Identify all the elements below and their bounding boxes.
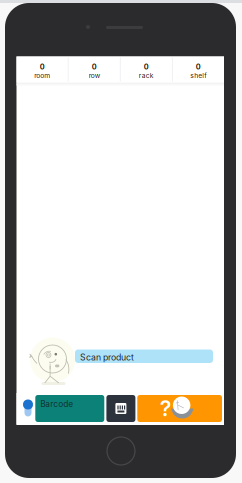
staticText: rack bbox=[139, 72, 154, 80]
button[interactable]: 0 bbox=[173, 56, 224, 82]
button[interactable]: Keyboard bbox=[106, 395, 135, 422]
staticText: 0 bbox=[92, 62, 97, 71]
staticText: 0 bbox=[196, 62, 201, 71]
button[interactable]: 0 bbox=[69, 56, 120, 82]
button[interactable]: Help bbox=[137, 395, 222, 422]
button[interactable]: 0 bbox=[16, 56, 68, 82]
staticText: row bbox=[89, 72, 100, 80]
staticText: 0 bbox=[40, 62, 45, 71]
staticText: room bbox=[34, 72, 50, 80]
staticText: ? bbox=[160, 395, 172, 421]
staticText: Scan product bbox=[80, 352, 134, 362]
button[interactable]: Barcode bbox=[35, 395, 104, 422]
button[interactable]: 0 bbox=[121, 56, 172, 82]
staticText: shelf bbox=[190, 72, 206, 80]
staticText: 0 bbox=[144, 62, 149, 71]
staticText: Barcode bbox=[40, 399, 73, 409]
